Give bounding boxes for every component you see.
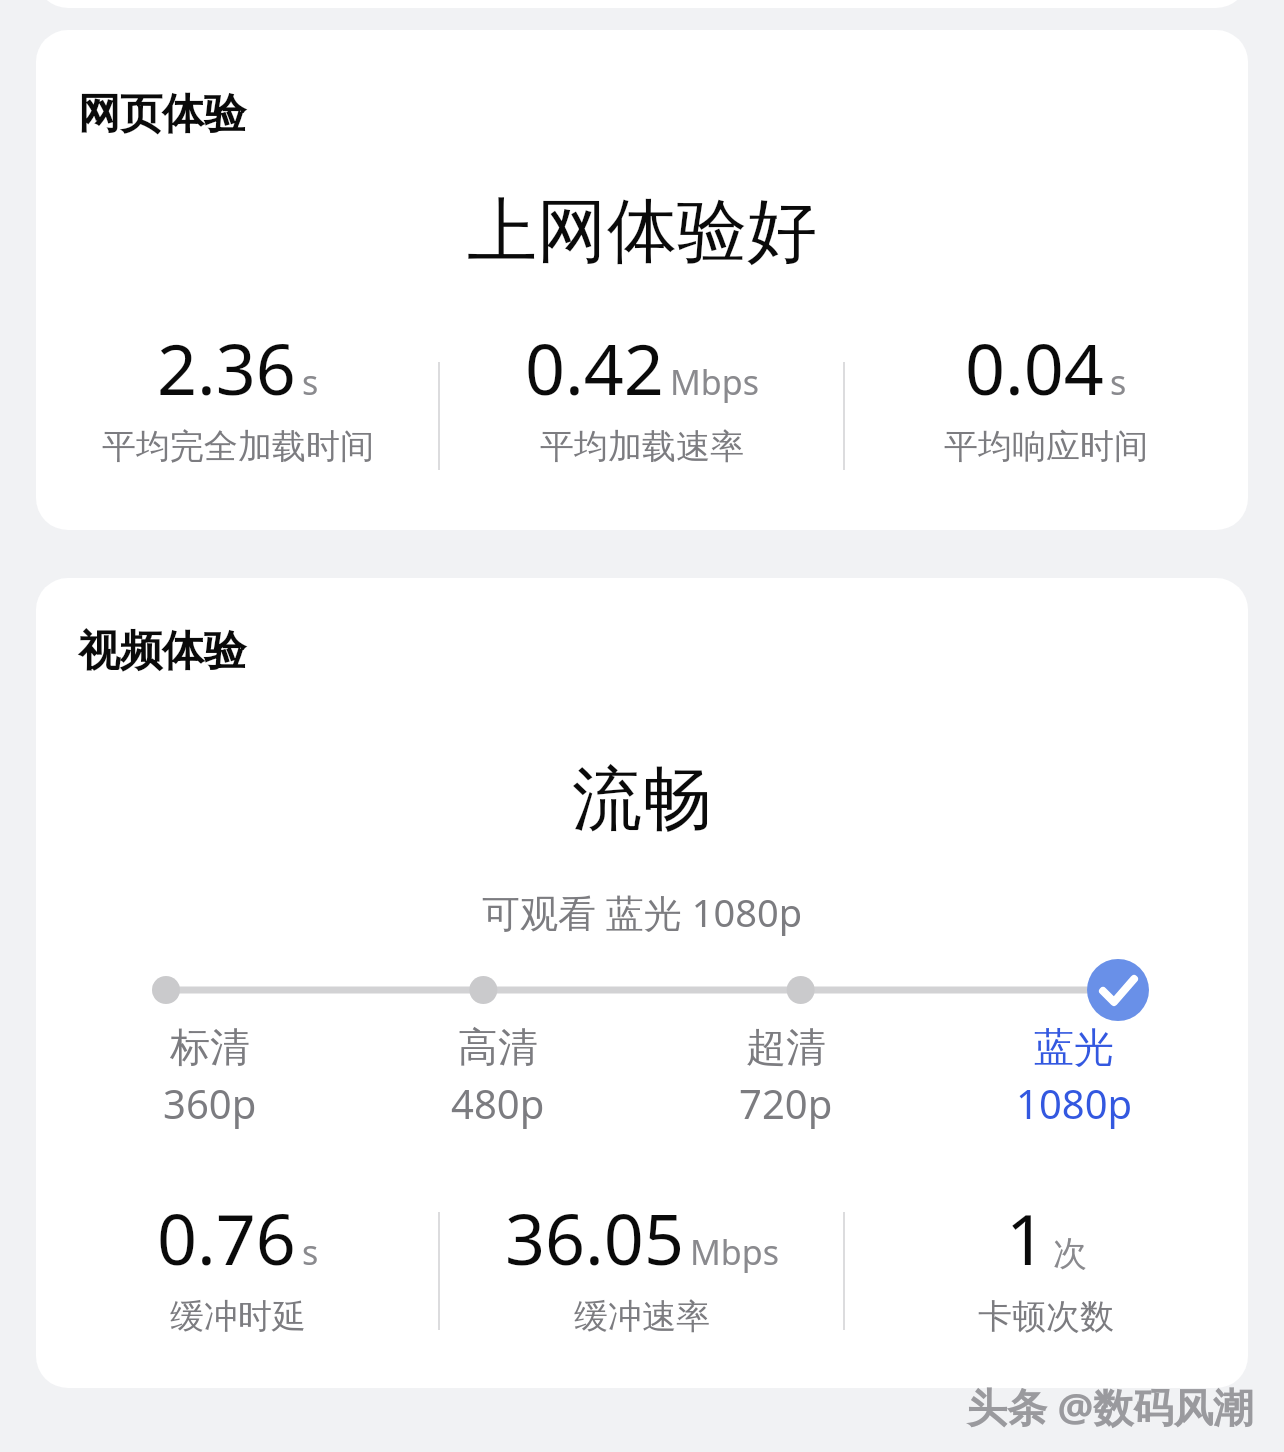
staticText: 头条 @数码风潮 — [967, 1379, 1254, 1434]
staticText: 可观看 蓝光 1080p — [36, 886, 1248, 938]
staticText: 蓝光 — [1034, 1022, 1114, 1072]
staticText: 超清 — [746, 1022, 826, 1072]
button[interactable]: 标清 — [66, 1022, 354, 1130]
staticText: Mbps — [690, 1229, 779, 1275]
staticText: 视频体验 — [78, 625, 246, 678]
staticText: 0.42 — [525, 320, 664, 415]
staticText: s — [302, 1229, 319, 1275]
staticText: Mbps — [670, 359, 759, 405]
button[interactable]: 网页体验 — [36, 30, 1248, 530]
button[interactable]: 高清 — [354, 1022, 642, 1130]
staticText: 上网体验好 — [36, 188, 1248, 276]
staticText: s — [1110, 359, 1127, 405]
button[interactable]: 蓝光 — [930, 1022, 1218, 1130]
staticText: 360p — [163, 1076, 257, 1130]
button[interactable]: 0.76 — [36, 1190, 440, 1338]
button[interactable]: 0.04 — [844, 320, 1248, 468]
staticText: 720p — [739, 1076, 833, 1130]
staticText: 网页体验 — [78, 88, 246, 141]
staticText: 缓冲时延 — [170, 1295, 306, 1338]
button[interactable]: 视频体验 — [36, 578, 1248, 1388]
staticText: s — [302, 359, 319, 405]
button[interactable]: 2.36 — [36, 320, 440, 468]
staticText: 平均响应时间 — [944, 425, 1148, 468]
staticText: 缓冲速率 — [574, 1295, 710, 1338]
staticText: 0.04 — [965, 320, 1104, 415]
staticText: 480p — [451, 1076, 545, 1130]
button[interactable]: 1 — [844, 1190, 1248, 1338]
staticText: 2.36 — [157, 320, 296, 415]
staticText: 1080p — [1016, 1076, 1133, 1130]
button[interactable]: 超清 — [642, 1022, 930, 1130]
staticText: 1 — [1006, 1190, 1047, 1285]
staticText: 0.76 — [157, 1190, 296, 1285]
staticText: 次 — [1053, 1232, 1087, 1275]
staticText: 高清 — [458, 1022, 538, 1072]
staticText: 流畅 — [36, 756, 1248, 844]
staticText: 平均加载速率 — [540, 425, 744, 468]
staticText: 标清 — [170, 1022, 250, 1072]
staticText: 卡顿次数 — [978, 1295, 1114, 1338]
button[interactable]: 36.05 — [440, 1190, 844, 1338]
staticText: 平均完全加载时间 — [102, 425, 374, 468]
staticText: 36.05 — [505, 1190, 684, 1285]
button[interactable]: 0.42 — [440, 320, 844, 468]
other: Video quality level: 蓝光 1080p — [36, 960, 1248, 1020]
